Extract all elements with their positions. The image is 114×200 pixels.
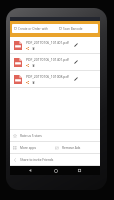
button[interactable]: PDF_20170106_101401.pdf [10, 54, 100, 71]
other: Share [26, 81, 29, 84]
staticText: PDF_20170106_101008.pdf [26, 74, 69, 79]
button[interactable]: More apps [10, 142, 55, 153]
staticText: PDF_20170106_101401.pdf [26, 40, 69, 45]
staticText: PDF_20170106_101401.pdf [26, 57, 69, 62]
button[interactable]: Recent apps [75, 166, 84, 175]
staticText: Scan Barcode [63, 27, 83, 31]
button[interactable]: Back [26, 166, 35, 175]
other: Share [26, 64, 29, 67]
button[interactable]: Rate us 5 stars [10, 130, 100, 141]
staticText: Rate us 5 stars [20, 134, 42, 138]
staticText: Create or Order with [18, 27, 48, 31]
button[interactable]: Share to invite Friends [10, 154, 100, 165]
other: Delete [32, 47, 35, 50]
staticText: Remove Ads [62, 146, 81, 150]
staticText: More apps [20, 146, 36, 150]
other: Edit [74, 43, 78, 47]
other: Edit [74, 77, 78, 81]
staticText: Share to invite Friends [20, 158, 54, 162]
button[interactable]: Create or Order with [12, 24, 57, 33]
other: Share [26, 47, 29, 50]
other: Edit [74, 60, 78, 64]
button[interactable]: PDF_20170106_101401.pdf [10, 37, 100, 54]
button[interactable]: Scan Barcode [57, 24, 98, 33]
other: Delete [32, 81, 35, 84]
button[interactable]: PDF_20170106_101008.pdf [10, 71, 100, 88]
button[interactable]: Home [51, 166, 60, 175]
button[interactable]: Remove Ads [55, 142, 100, 153]
other: Delete [32, 64, 35, 67]
